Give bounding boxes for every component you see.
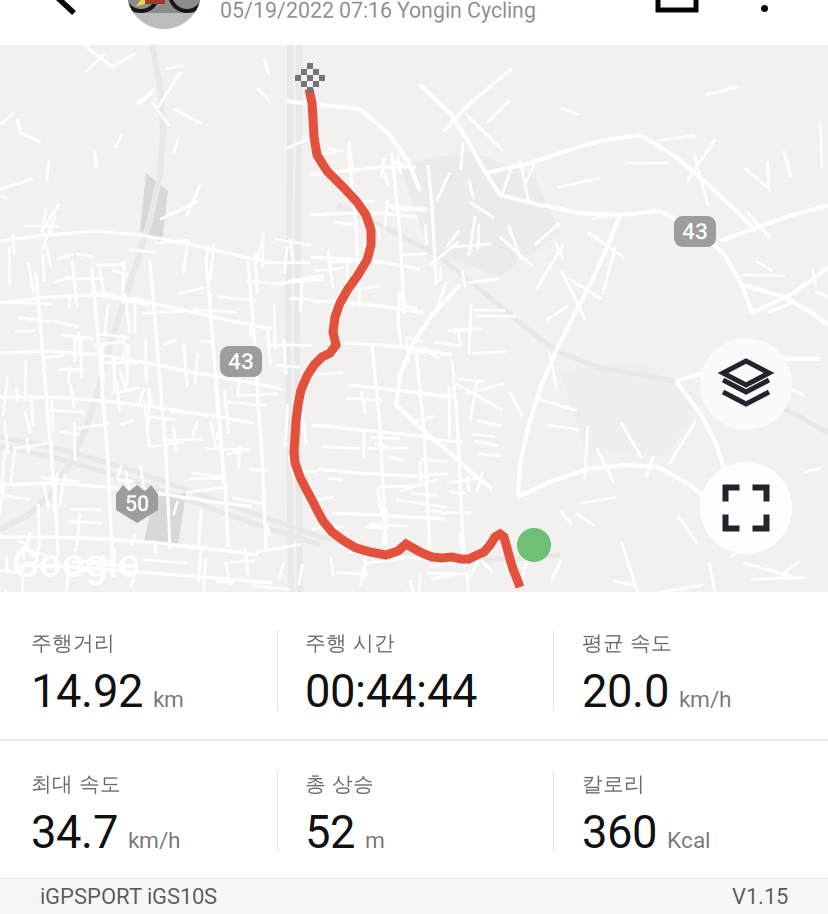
staticText: 360 bbox=[582, 806, 657, 859]
staticText: m bbox=[365, 827, 385, 854]
staticText: 52 bbox=[305, 806, 355, 859]
button[interactable]: More options bbox=[736, 0, 792, 20]
staticText: 20.0 bbox=[582, 665, 669, 718]
staticText: 43 bbox=[228, 348, 254, 375]
staticText: Google bbox=[12, 540, 139, 587]
staticText: 34.7 bbox=[31, 806, 118, 859]
staticText: 주행거리 bbox=[31, 630, 115, 656]
staticText: 00:44:44 bbox=[305, 665, 477, 718]
staticText: Kcal bbox=[667, 827, 711, 854]
staticText: km/h bbox=[128, 827, 180, 854]
button[interactable]: Share bbox=[644, 0, 710, 20]
staticText: km/h bbox=[679, 686, 731, 713]
staticText: 최대 속도 bbox=[31, 771, 121, 797]
staticText: 주행 시간 bbox=[305, 630, 395, 656]
staticText: km bbox=[153, 686, 184, 713]
staticText: 05/19/2022 07:16 Yongin Cycling bbox=[220, 0, 536, 23]
staticText: 14.92 bbox=[31, 665, 143, 718]
staticText: 43 bbox=[682, 218, 708, 245]
staticText: 평균 속도 bbox=[582, 630, 672, 656]
staticText: 칼로리 bbox=[582, 771, 645, 797]
button[interactable]: Full screen bbox=[700, 462, 792, 554]
staticText: iGPSPORT iGS10S bbox=[40, 884, 217, 909]
staticText: 총 상승 bbox=[305, 771, 374, 797]
staticText: 50 bbox=[125, 491, 149, 516]
button[interactable]: Map layers bbox=[700, 338, 792, 430]
staticText: V1.15 bbox=[732, 884, 788, 909]
button[interactable]: Back bbox=[32, 0, 98, 20]
